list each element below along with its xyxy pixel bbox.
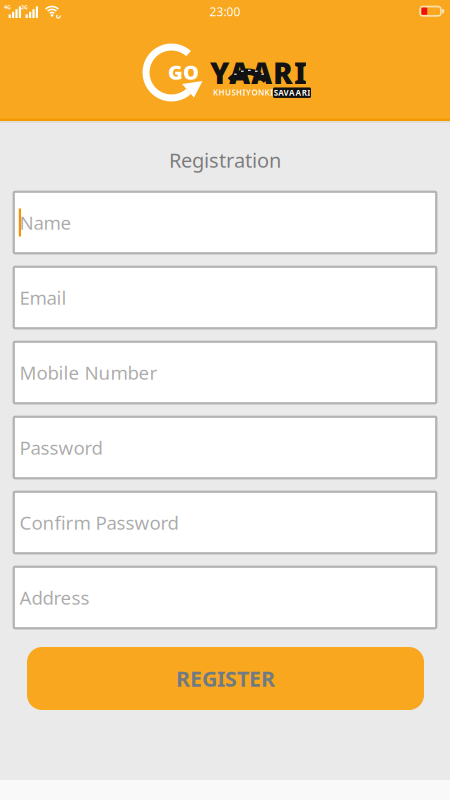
staticText: Mobile Number [19, 360, 157, 385]
staticText: 4G [4, 4, 11, 11]
button[interactable]: Email [12, 265, 437, 329]
staticText: KHUSHIYONKI [213, 87, 273, 98]
staticText: Registration [169, 147, 281, 173]
staticText: Name [19, 210, 71, 235]
staticText: Email [19, 285, 66, 310]
staticText: Confirm Password [19, 510, 178, 535]
staticText: Password [19, 435, 102, 460]
staticText: YAARI [210, 53, 307, 92]
staticText: 23:00 [209, 3, 240, 19]
staticText: GO [168, 59, 199, 85]
button[interactable]: REGISTER [27, 647, 424, 710]
staticText: Address [19, 585, 89, 610]
staticText: SAVAARI [274, 87, 310, 98]
button[interactable]: Confirm Password [12, 490, 437, 554]
button[interactable]: Mobile Number [12, 340, 437, 404]
button[interactable]: Address [12, 565, 437, 629]
button[interactable]: Name [12, 190, 437, 254]
button[interactable]: Password [12, 415, 437, 479]
staticText: REGISTER [176, 664, 275, 693]
staticText: 2G [21, 4, 28, 11]
